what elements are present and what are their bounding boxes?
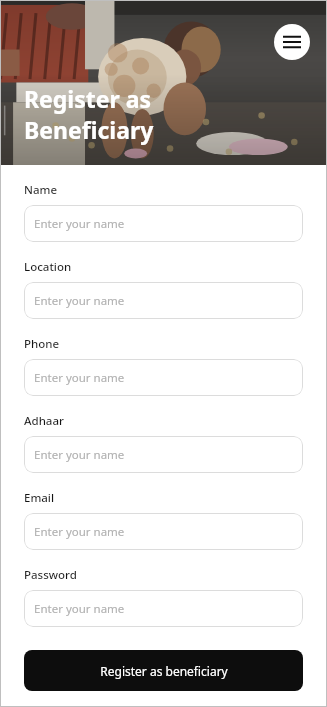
staticText: Adhaar <box>24 413 64 429</box>
staticText: Name <box>24 182 57 198</box>
staticText: Enter your name <box>34 447 125 463</box>
staticText: Phone <box>24 336 60 352</box>
button[interactable]: Enter your name <box>24 513 303 550</box>
button[interactable]: Open navigation menu <box>274 24 310 60</box>
staticText: Email <box>24 490 55 506</box>
staticText: Register as beneficiary <box>100 663 228 679</box>
staticText: Enter your name <box>34 370 125 386</box>
staticText: Location <box>24 259 72 275</box>
staticText: Beneficiary <box>24 114 154 145</box>
button[interactable]: Register as beneficiary <box>24 650 303 691</box>
button[interactable]: Enter your name <box>24 359 303 396</box>
button[interactable]: Enter your name <box>24 205 303 242</box>
staticText: Enter your name <box>34 601 125 617</box>
staticText: Enter your name <box>34 293 125 309</box>
button[interactable]: Enter your name <box>24 282 303 319</box>
button[interactable]: Enter your name <box>24 436 303 473</box>
staticText: Register as <box>24 83 152 114</box>
staticText: Enter your name <box>34 216 125 232</box>
button[interactable]: Enter your name <box>24 590 303 627</box>
staticText: Enter your name <box>34 524 125 540</box>
staticText: Password <box>24 567 77 583</box>
